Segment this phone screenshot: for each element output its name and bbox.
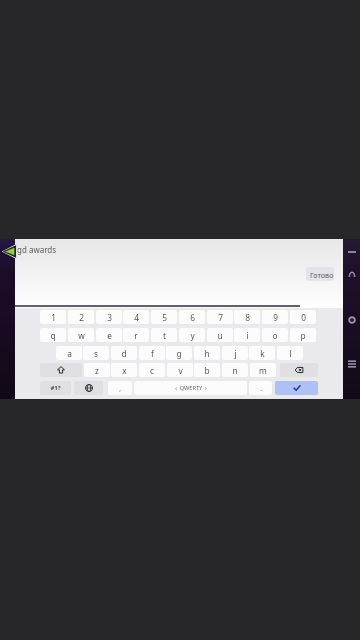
- staticText: u: [217, 330, 223, 341]
- staticText: h: [204, 348, 210, 359]
- staticText: 1: [51, 312, 56, 323]
- button[interactable]: Готово: [306, 267, 334, 281]
- button[interactable]: h: [194, 346, 220, 360]
- button[interactable]: m: [250, 363, 276, 377]
- button[interactable]: 0: [290, 310, 316, 324]
- button[interactable]: i: [234, 328, 260, 342]
- button[interactable]: w: [68, 328, 94, 342]
- button[interactable]: u: [207, 328, 233, 342]
- staticText: .: [260, 384, 262, 393]
- staticText: 6: [190, 312, 195, 323]
- button[interactable]: s: [83, 346, 109, 360]
- staticText: p: [300, 330, 306, 341]
- button[interactable]: [40, 363, 82, 377]
- button[interactable]: r: [123, 328, 149, 342]
- staticText: gd awards: [17, 244, 57, 255]
- button[interactable]: 7: [207, 310, 233, 324]
- button[interactable]: v: [167, 363, 193, 377]
- staticText: w: [78, 330, 85, 341]
- staticText: b: [204, 365, 210, 376]
- button[interactable]: 3: [96, 310, 122, 324]
- button[interactable]: b: [194, 363, 220, 377]
- staticText: 5: [162, 312, 167, 323]
- button[interactable]: 4: [123, 310, 149, 324]
- button[interactable]: c: [139, 363, 165, 377]
- button[interactable]: 8: [234, 310, 260, 324]
- staticText: q: [50, 330, 56, 341]
- staticText: ,: [119, 384, 121, 393]
- staticText: c: [150, 365, 154, 376]
- button[interactable]: [74, 381, 103, 395]
- button[interactable]: f: [139, 346, 165, 360]
- button[interactable]: p: [290, 328, 316, 342]
- staticText: z: [95, 365, 99, 376]
- button[interactable]: #1?: [40, 381, 71, 395]
- button[interactable]: j: [222, 346, 248, 360]
- button[interactable]: Back: [3, 244, 17, 259]
- staticText: 9: [273, 312, 278, 323]
- button[interactable]: d: [111, 346, 137, 360]
- staticText: 8: [245, 312, 250, 323]
- button[interactable]: 5: [151, 310, 177, 324]
- button[interactable]: y: [179, 328, 205, 342]
- staticText: g: [176, 348, 182, 359]
- button[interactable]: t: [151, 328, 177, 342]
- button[interactable]: .: [249, 381, 272, 395]
- button[interactable]: Back: [348, 271, 356, 279]
- button[interactable]: Home: [348, 316, 356, 324]
- staticText: t: [163, 330, 166, 341]
- staticText: 4: [134, 312, 139, 323]
- button[interactable]: [280, 363, 318, 377]
- button[interactable]: n: [222, 363, 248, 377]
- button[interactable]: x: [111, 363, 137, 377]
- button[interactable]: a: [56, 346, 82, 360]
- button[interactable]: [275, 381, 318, 395]
- staticText: e: [107, 330, 112, 341]
- staticText: x: [122, 365, 127, 376]
- button[interactable]: o: [262, 328, 288, 342]
- button[interactable]: Recent apps: [348, 360, 356, 368]
- staticText: Готово: [310, 270, 334, 280]
- button[interactable]: l: [277, 346, 303, 360]
- staticText: k: [260, 348, 265, 359]
- button[interactable]: ,: [108, 381, 132, 395]
- staticText: f: [151, 348, 154, 359]
- staticText: y: [190, 330, 195, 341]
- button[interactable]: g: [166, 346, 192, 360]
- staticText: m: [259, 365, 267, 376]
- staticText: v: [178, 365, 183, 376]
- staticText: a: [67, 348, 72, 359]
- staticText: 7: [218, 312, 223, 323]
- button[interactable]: e: [96, 328, 122, 342]
- button[interactable]: 9: [262, 310, 288, 324]
- staticText: #1?: [50, 384, 61, 392]
- staticText: 0: [301, 312, 306, 323]
- button[interactable]: q: [40, 328, 66, 342]
- button[interactable]: z: [84, 363, 110, 377]
- button[interactable]: 2: [68, 310, 94, 324]
- staticText: 3: [107, 312, 112, 323]
- staticText: i: [246, 330, 249, 341]
- staticText: n: [232, 365, 238, 376]
- button[interactable]: 1: [40, 310, 66, 324]
- staticText: s: [94, 348, 98, 359]
- staticText: 2: [79, 312, 84, 323]
- button[interactable]: ‹ QWERTY ›: [134, 381, 247, 395]
- staticText: ‹ QWERTY ›: [175, 384, 207, 392]
- button[interactable]: k: [249, 346, 275, 360]
- staticText: d: [121, 348, 127, 359]
- staticText: l: [289, 348, 292, 359]
- staticText: o: [272, 330, 278, 341]
- staticText: j: [234, 348, 237, 359]
- staticText: r: [134, 330, 138, 341]
- button[interactable]: 6: [179, 310, 205, 324]
